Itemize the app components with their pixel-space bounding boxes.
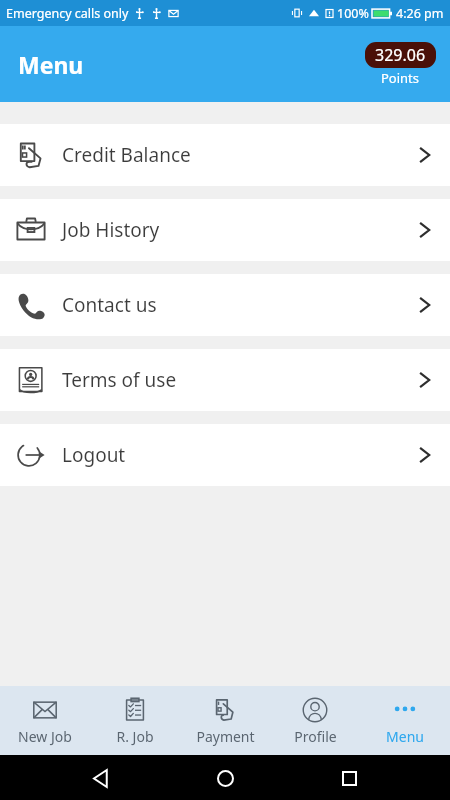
button[interactable]: 329.06 — [365, 42, 436, 68]
staticText: Profile — [294, 727, 337, 746]
button[interactable]: Payment — [180, 686, 270, 755]
button[interactable]: Profile — [270, 686, 360, 755]
button[interactable]: Logout — [0, 424, 450, 486]
staticText: Menu — [18, 49, 84, 80]
staticText: 4:26 pm — [396, 5, 444, 22]
staticText: R. Job — [116, 727, 154, 746]
button[interactable]: R. Job — [90, 686, 180, 755]
staticText: Contact us — [62, 292, 157, 318]
staticText: Payment — [196, 727, 255, 746]
staticText: Logout — [62, 442, 126, 468]
button[interactable]: Credit Balance — [0, 124, 450, 186]
staticText: Credit Balance — [62, 142, 191, 168]
staticText: Job History — [62, 217, 160, 243]
staticText: New Job — [18, 727, 72, 746]
button[interactable]: Terms of use — [0, 349, 450, 411]
staticText: 329.06 — [375, 44, 426, 66]
button[interactable]: Contact us — [0, 274, 450, 336]
staticText: Points — [381, 69, 420, 87]
button[interactable]: Back — [80, 756, 124, 800]
staticText: Emergency calls only — [6, 5, 129, 22]
button[interactable]: New Job — [0, 686, 90, 755]
staticText: 100% — [337, 5, 369, 22]
button[interactable]: Menu — [360, 686, 450, 755]
staticText: Menu — [386, 727, 424, 746]
button[interactable]: Home — [203, 756, 247, 800]
staticText: Terms of use — [62, 367, 177, 393]
button[interactable]: Job History — [0, 199, 450, 261]
button[interactable]: Recents — [327, 756, 371, 800]
